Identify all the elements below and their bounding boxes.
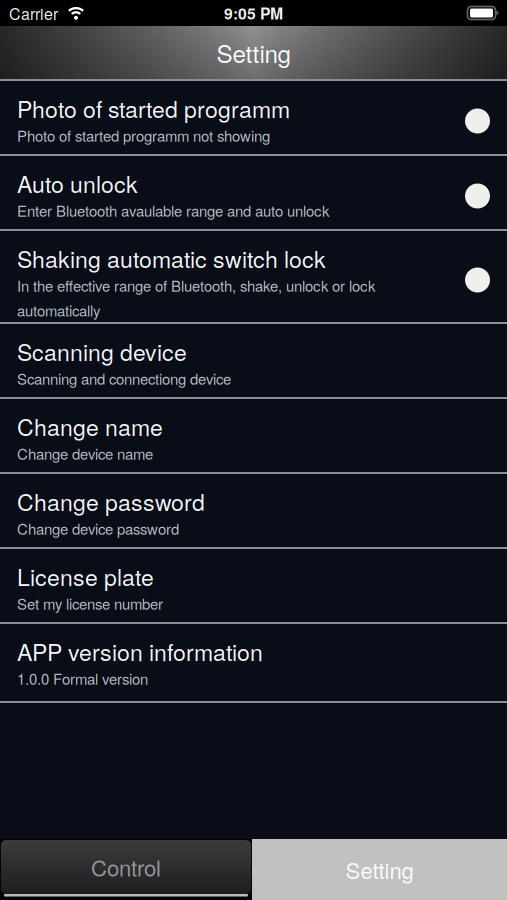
staticText: Auto unlock bbox=[17, 166, 138, 199]
staticText: Photo of started programm not showing bbox=[17, 124, 270, 146]
staticText: 1.0.0 Formal version bbox=[17, 667, 148, 689]
staticText: Change name bbox=[17, 409, 163, 442]
staticText: Shaking automatic switch lock bbox=[17, 241, 326, 274]
staticText: Setting bbox=[216, 35, 290, 70]
button[interactable]: Shaking automatic switch lock bbox=[0, 231, 507, 322]
button[interactable]: APP version information bbox=[0, 624, 507, 701]
staticText: In the effective range of Bluetooth, sha… bbox=[17, 274, 375, 321]
staticText: Set my license number bbox=[17, 592, 163, 614]
staticText: Change password bbox=[17, 484, 205, 517]
button[interactable]: Control bbox=[0, 839, 252, 900]
button[interactable]: Photo of started programm bbox=[0, 81, 507, 154]
button[interactable]: Auto unlock bbox=[0, 156, 507, 229]
button[interactable]: Change name bbox=[0, 399, 507, 472]
button[interactable]: Setting bbox=[252, 839, 507, 900]
staticText: License plate bbox=[17, 559, 154, 592]
staticText: Enter Bluetooth avaulable range and auto… bbox=[17, 199, 329, 221]
button[interactable]: Scanning device bbox=[0, 324, 507, 397]
button[interactable]: Change password bbox=[0, 474, 507, 547]
staticText: Control bbox=[91, 851, 161, 883]
staticText: Change device password bbox=[17, 517, 179, 539]
staticText: Change device name bbox=[17, 442, 153, 464]
staticText: Carrier bbox=[9, 1, 58, 24]
staticText: 9:05 PM bbox=[224, 2, 283, 24]
staticText: Setting bbox=[345, 854, 413, 885]
button[interactable]: License plate bbox=[0, 549, 507, 622]
staticText: Photo of started programm bbox=[17, 91, 290, 124]
staticText: Scanning and connectiong device bbox=[17, 367, 231, 389]
staticText: Scanning device bbox=[17, 334, 187, 367]
staticText: APP version information bbox=[17, 634, 263, 667]
